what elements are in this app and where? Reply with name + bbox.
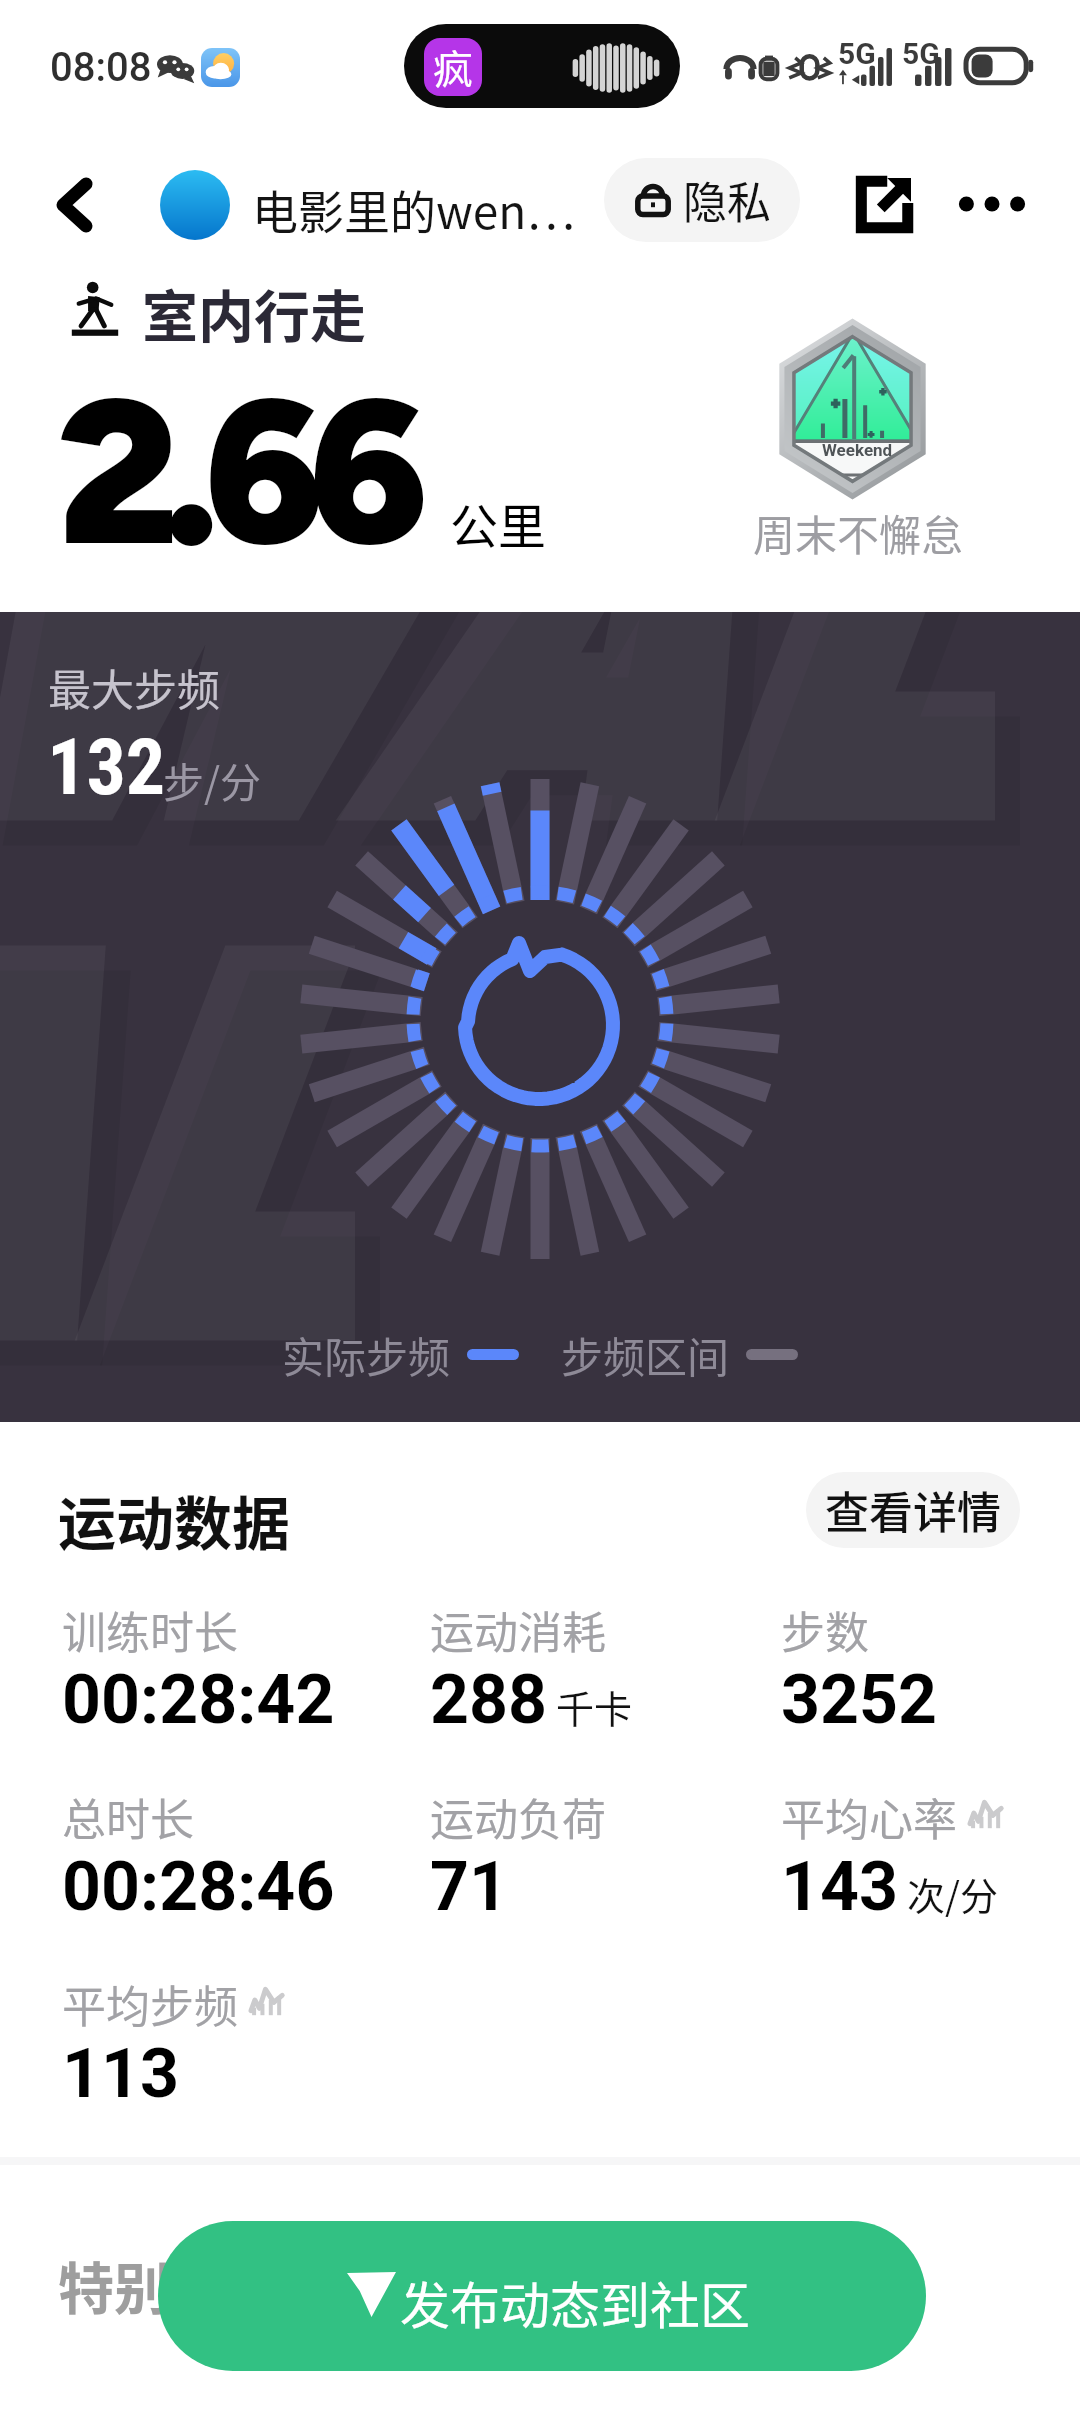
staticText: 00:28:42 [62, 1660, 335, 1740]
staticText: 实际步频 [282, 1324, 451, 1385]
staticText: 平均心率 [781, 1785, 957, 1849]
staticText: 2.66 [57, 350, 414, 594]
staticText: WALK [0, 902, 380, 1422]
staticText: 08:08 [50, 44, 152, 91]
staticText: 288 [430, 1660, 548, 1740]
staticText: 平均步频 [62, 1972, 238, 2036]
staticText: 隐私 [683, 168, 771, 232]
staticText: 电影里的wen… [252, 176, 575, 243]
staticText: 周末不懈怠 [753, 502, 964, 563]
staticText: 3252 [781, 1660, 938, 1740]
staticText: WALK [0, 612, 995, 922]
staticText: 运动负荷 [430, 1785, 606, 1849]
staticText: 次/分 [907, 1866, 998, 1921]
staticText: 步数 [781, 1598, 869, 1662]
staticText: 千卡 [556, 1679, 633, 1734]
staticText: 特别 [58, 2244, 170, 2325]
button[interactable]: 隐私 [604, 158, 800, 242]
staticText: Weekend [822, 440, 893, 460]
button[interactable]: 发布动态到社区 [158, 2221, 926, 2371]
staticText: 室内行走 [142, 272, 366, 353]
staticText: WALK [0, 877, 355, 1422]
staticText: 运动消耗 [430, 1598, 606, 1662]
staticText: 143 [781, 1847, 899, 1927]
staticText: 5G [838, 36, 876, 71]
staticText: 113 [62, 2034, 180, 2114]
button[interactable]: Back [34, 165, 114, 245]
staticText: 最大步频 [48, 656, 220, 718]
staticText: 总时长 [62, 1785, 194, 1849]
staticText: 发布动态到社区 [400, 2266, 750, 2338]
staticText: 00:28:46 [62, 1847, 335, 1927]
button[interactable]: Share [842, 162, 926, 246]
button[interactable]: 查看详情 [806, 1472, 1020, 1548]
staticText: 运动数据 [58, 1478, 291, 1562]
staticText: 查看详情 [825, 1478, 1001, 1542]
staticText: 5G [902, 36, 940, 71]
staticText: 训练时长 [62, 1598, 238, 1662]
staticText: WALK [0, 612, 1020, 947]
staticText: 公里 [450, 488, 547, 558]
staticText: 步/分 [163, 750, 262, 809]
staticText: 疯 [433, 38, 473, 96]
staticText: 步频区间 [561, 1324, 730, 1385]
staticText: 71 [430, 1847, 509, 1927]
staticText: 132 [47, 722, 166, 813]
button[interactable]: More options [950, 162, 1034, 246]
